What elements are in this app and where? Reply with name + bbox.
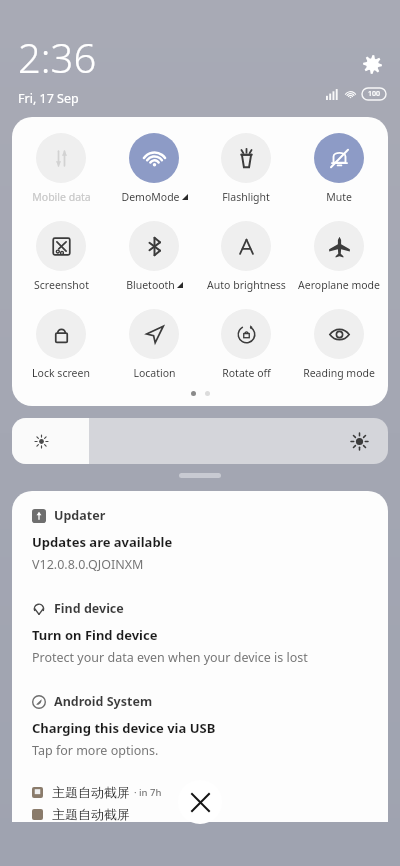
button[interactable]: Rotate off xyxy=(202,307,290,382)
button[interactable]: Screenshot xyxy=(17,219,105,294)
button[interactable]: Updater xyxy=(12,491,388,584)
staticText: Mobile data xyxy=(32,190,91,204)
staticText: Protect your data even when your device … xyxy=(32,649,308,666)
button[interactable]: Android System xyxy=(12,677,388,770)
staticText: Aeroplane mode xyxy=(298,278,380,292)
staticText: Charging this device via USB xyxy=(32,719,216,737)
staticText: 100 xyxy=(368,89,381,99)
staticText: 主题自动截屏 xyxy=(52,784,130,800)
button[interactable]: Mobile data xyxy=(17,131,105,206)
button[interactable]: DemoMode xyxy=(110,131,198,206)
button[interactable]: Brightness xyxy=(12,418,388,464)
staticText: · in 7h xyxy=(134,786,162,799)
staticText: DemoMode xyxy=(121,190,180,204)
staticText: 主题自动截屏 xyxy=(52,806,130,822)
staticText: Fri, 17 Sep xyxy=(18,90,79,107)
staticText: Flashlight xyxy=(222,190,270,204)
staticText: Reading mode xyxy=(303,366,375,380)
staticText: Updates are available xyxy=(32,533,173,551)
staticText: Android System xyxy=(54,693,153,710)
button[interactable]: Lock screen xyxy=(17,307,105,382)
staticText: Screenshot xyxy=(34,278,89,292)
staticText: Turn on Find device xyxy=(32,626,158,644)
button[interactable]: Flashlight xyxy=(202,131,290,206)
button[interactable]: Mute xyxy=(295,131,383,206)
button[interactable]: Clear all notifications xyxy=(178,780,222,824)
staticText: Location xyxy=(133,366,176,380)
button[interactable]: Auto brightness xyxy=(202,219,290,294)
button[interactable]: Bluetooth xyxy=(110,219,198,294)
staticText: Bluetooth xyxy=(126,278,175,292)
staticText: Tap for more options. xyxy=(32,742,159,759)
button[interactable]: Location xyxy=(110,307,198,382)
button[interactable]: 主题自动截屏 xyxy=(12,806,388,822)
staticText: Lock screen xyxy=(32,366,90,380)
staticText: Updater xyxy=(54,507,106,524)
button[interactable]: Settings xyxy=(358,50,386,78)
button[interactable]: Find device xyxy=(12,584,388,677)
staticText: Mute xyxy=(326,190,352,204)
staticText: Auto brightness xyxy=(207,278,286,292)
button[interactable]: 主题自动截屏 xyxy=(12,782,388,806)
button[interactable]: Reading mode xyxy=(295,307,383,382)
button[interactable]: Aeroplane mode xyxy=(295,219,383,294)
staticText: V12.0.8.0.QJOINXM xyxy=(32,556,144,573)
staticText: 2:36 xyxy=(18,30,97,84)
staticText: Find device xyxy=(54,600,124,617)
staticText: Rotate off xyxy=(222,366,271,380)
